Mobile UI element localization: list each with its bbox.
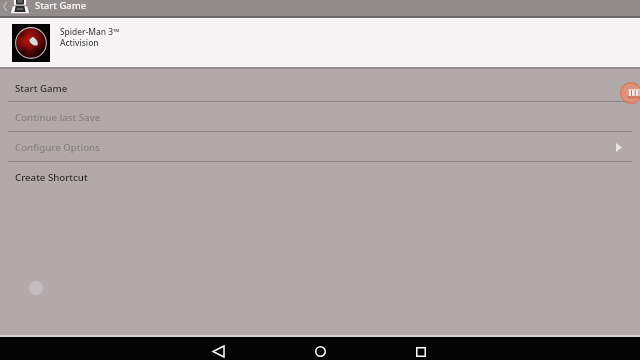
staticText: Continue last Save: [15, 111, 101, 124]
button[interactable]: Home: [308, 343, 332, 360]
button[interactable]: Configure Options: [0, 132, 640, 162]
button[interactable]: Back: [0, 0, 11, 16]
staticText: Create Shortcut: [15, 171, 88, 184]
staticText: Spider-Man 3™: [60, 26, 120, 37]
staticText: Start Game: [35, 0, 87, 12]
button[interactable]: Recent apps: [409, 343, 433, 360]
button[interactable]: Continue last Save: [0, 102, 640, 132]
button[interactable]: Spider-Man 3™: [0, 19, 640, 67]
staticText: Activision: [60, 37, 99, 48]
button[interactable]: Create Shortcut: [0, 162, 640, 192]
staticText: Start Game: [15, 82, 68, 95]
other: Console: [11, 0, 29, 16]
button[interactable]: Back: [206, 343, 230, 360]
staticText: Configure Options: [15, 141, 100, 154]
button[interactable]: Start Game: [0, 69, 640, 102]
